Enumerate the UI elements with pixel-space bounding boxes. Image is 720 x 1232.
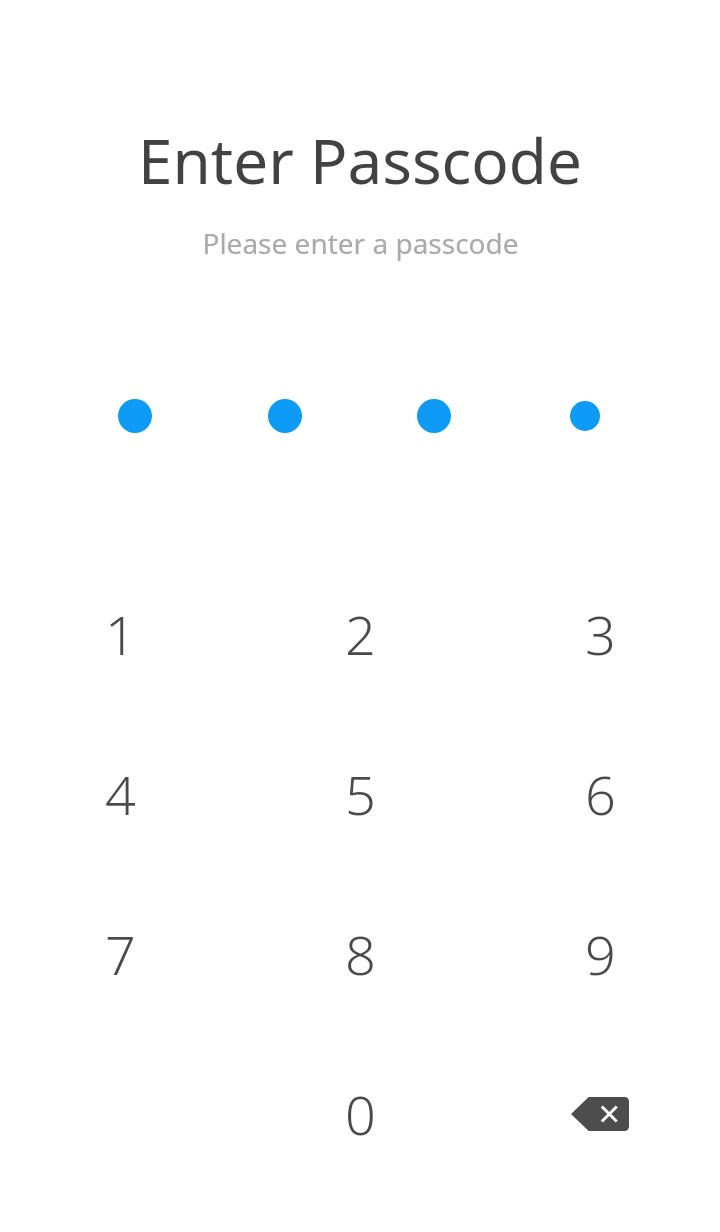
staticText: 5 — [345, 757, 376, 831]
button[interactable]: 2 — [240, 554, 480, 714]
staticText: 7 — [105, 917, 136, 991]
button[interactable]: 0 — [240, 1034, 480, 1194]
staticText: 8 — [345, 917, 376, 991]
staticText: 1 — [105, 597, 136, 671]
staticText: 4 — [105, 757, 136, 831]
button[interactable]: 9 — [480, 874, 720, 1034]
button[interactable]: 5 — [240, 714, 480, 874]
button[interactable]: 7 — [0, 874, 240, 1034]
staticText: 6 — [585, 757, 616, 831]
staticText: 0 — [345, 1077, 376, 1151]
button[interactable]: 6 — [480, 714, 720, 874]
button[interactable]: 8 — [240, 874, 480, 1034]
staticText: 2 — [345, 597, 376, 671]
button[interactable]: Backspace — [480, 1034, 720, 1194]
staticText: Please enter a passcode — [202, 224, 519, 262]
button[interactable]: 3 — [480, 554, 720, 714]
staticText: 3 — [585, 597, 616, 671]
staticText: Enter Passcode — [138, 118, 582, 202]
button[interactable]: 4 — [0, 714, 240, 874]
button[interactable]: 1 — [0, 554, 240, 714]
staticText: 9 — [585, 917, 616, 991]
